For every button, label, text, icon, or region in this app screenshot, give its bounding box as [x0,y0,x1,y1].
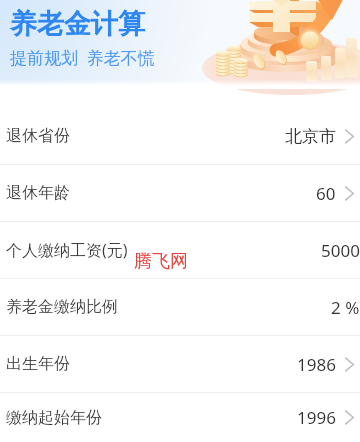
staticText: 1986 [297,353,336,376]
staticText: 养老金计算 [10,7,145,41]
button[interactable]: 退休年龄 [0,165,360,221]
staticText: 出生年份 [6,354,70,374]
staticText: 退休年龄 [6,183,70,203]
staticText: 2 % [331,296,360,319]
button[interactable]: 个人缴纳工资(元) [0,222,360,278]
staticText: 缴纳起始年份 [6,408,102,428]
staticText: 60 [316,182,336,205]
staticText: 北京市 [285,126,336,147]
staticText: 退休省份 [6,126,70,146]
staticText: 个人缴纳工资(元) [6,239,128,261]
button[interactable]: 养老金缴纳比例 [0,279,360,335]
button[interactable]: 缴纳起始年份 [0,393,360,442]
button[interactable]: 退休省份 [0,108,360,164]
staticText: 养老金缴纳比例 [6,297,118,317]
staticText: 5000 [321,239,360,262]
staticText: 1996 [297,406,336,429]
staticText: 腾飞网 [134,250,188,273]
button[interactable]: 出生年份 [0,336,360,392]
staticText: 提前规划 养老不慌 [10,46,155,69]
